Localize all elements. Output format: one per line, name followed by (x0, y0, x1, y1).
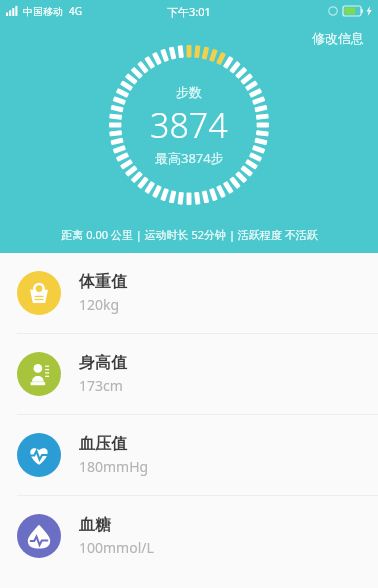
staticText: 120kg (79, 295, 120, 314)
staticText: 中国移动 (23, 5, 63, 18)
staticText: 100mmol/L (79, 538, 154, 557)
staticText: 身高值 (79, 353, 127, 373)
button[interactable]: 血压值 (0, 415, 378, 495)
staticText: 下午3:01 (167, 4, 211, 19)
button[interactable]: 血糖 (0, 496, 378, 576)
button[interactable]: 体重值 (0, 253, 378, 333)
staticText: 修改信息 (312, 30, 364, 46)
staticText: 173cm (79, 376, 123, 395)
staticText: 距离 0.00 公里 | 运动时长 52分钟 | 活跃程度 不活跃 (61, 227, 318, 242)
button[interactable]: 步数 (109, 45, 269, 205)
staticText: 体重值 (79, 272, 127, 292)
staticText: 血糖 (79, 515, 111, 535)
staticText: 最高3874步 (155, 149, 224, 167)
button[interactable]: 身高值 (0, 334, 378, 414)
staticText: 180mmHg (79, 457, 149, 476)
button[interactable]: 修改信息 (298, 22, 378, 54)
staticText: 3874 (150, 102, 228, 148)
staticText: 步数 (176, 84, 202, 100)
button[interactable]: 距离 0.00 公里 | 运动时长 52分钟 | 活跃程度 不活跃 (0, 215, 378, 253)
staticText: 4G (69, 4, 82, 18)
staticText: 血压值 (79, 434, 127, 454)
